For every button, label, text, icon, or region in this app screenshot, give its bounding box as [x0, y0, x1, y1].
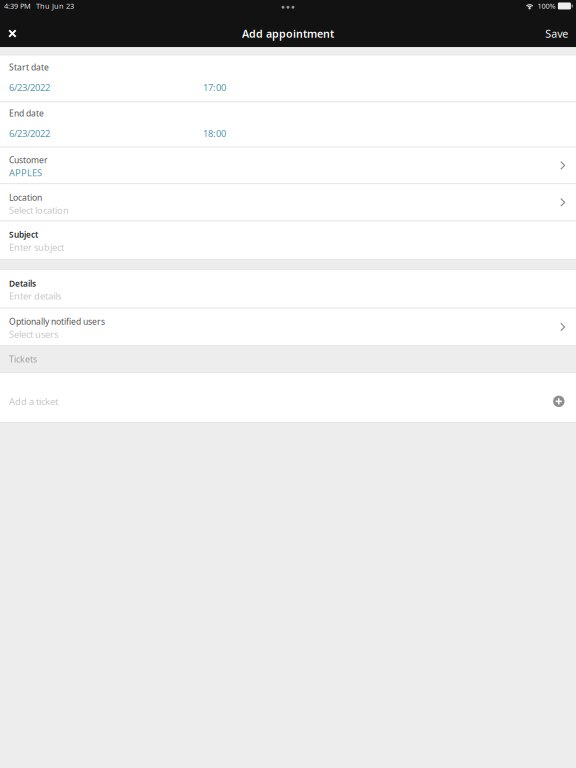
- button[interactable]: Save: [545, 20, 576, 47]
- staticText: Enter subject: [9, 241, 64, 253]
- button[interactable]: Close: [0, 20, 32, 47]
- staticText: Start date: [9, 61, 49, 73]
- staticText: 18:00: [203, 127, 226, 140]
- staticText: Enter details: [9, 290, 61, 302]
- staticText: Subject: [9, 229, 38, 240]
- button[interactable]: Details: [0, 270, 576, 308]
- staticText: 17:00: [203, 81, 226, 94]
- staticText: 6/23/2022: [9, 127, 50, 140]
- staticText: Location: [9, 192, 42, 203]
- staticText: Save: [545, 26, 568, 41]
- button[interactable]: End date: [0, 102, 576, 147]
- staticText: End date: [9, 107, 44, 119]
- button[interactable]: Add a ticket: [0, 373, 576, 422]
- staticText: 4:39 PM: [4, 1, 31, 11]
- button[interactable]: Customer: [0, 148, 576, 183]
- staticText: Thu Jun 23: [36, 1, 74, 11]
- staticText: Customer: [9, 154, 48, 166]
- staticText: Optionally notified users: [9, 316, 105, 327]
- staticText: Tickets: [9, 353, 37, 365]
- staticText: Select users: [9, 328, 58, 340]
- staticText: 6/23/2022: [9, 81, 50, 94]
- staticText: Select location: [9, 204, 69, 216]
- button[interactable]: Location: [0, 184, 576, 220]
- staticText: Details: [9, 278, 36, 289]
- button[interactable]: Optionally notified users: [0, 309, 576, 345]
- button[interactable]: Start date: [0, 55, 576, 101]
- staticText: APPLES: [9, 166, 42, 179]
- staticText: 100%: [537, 1, 555, 11]
- staticText: Add appointment: [242, 26, 334, 41]
- button[interactable]: Subject: [0, 221, 576, 259]
- staticText: Add a ticket: [9, 395, 58, 408]
